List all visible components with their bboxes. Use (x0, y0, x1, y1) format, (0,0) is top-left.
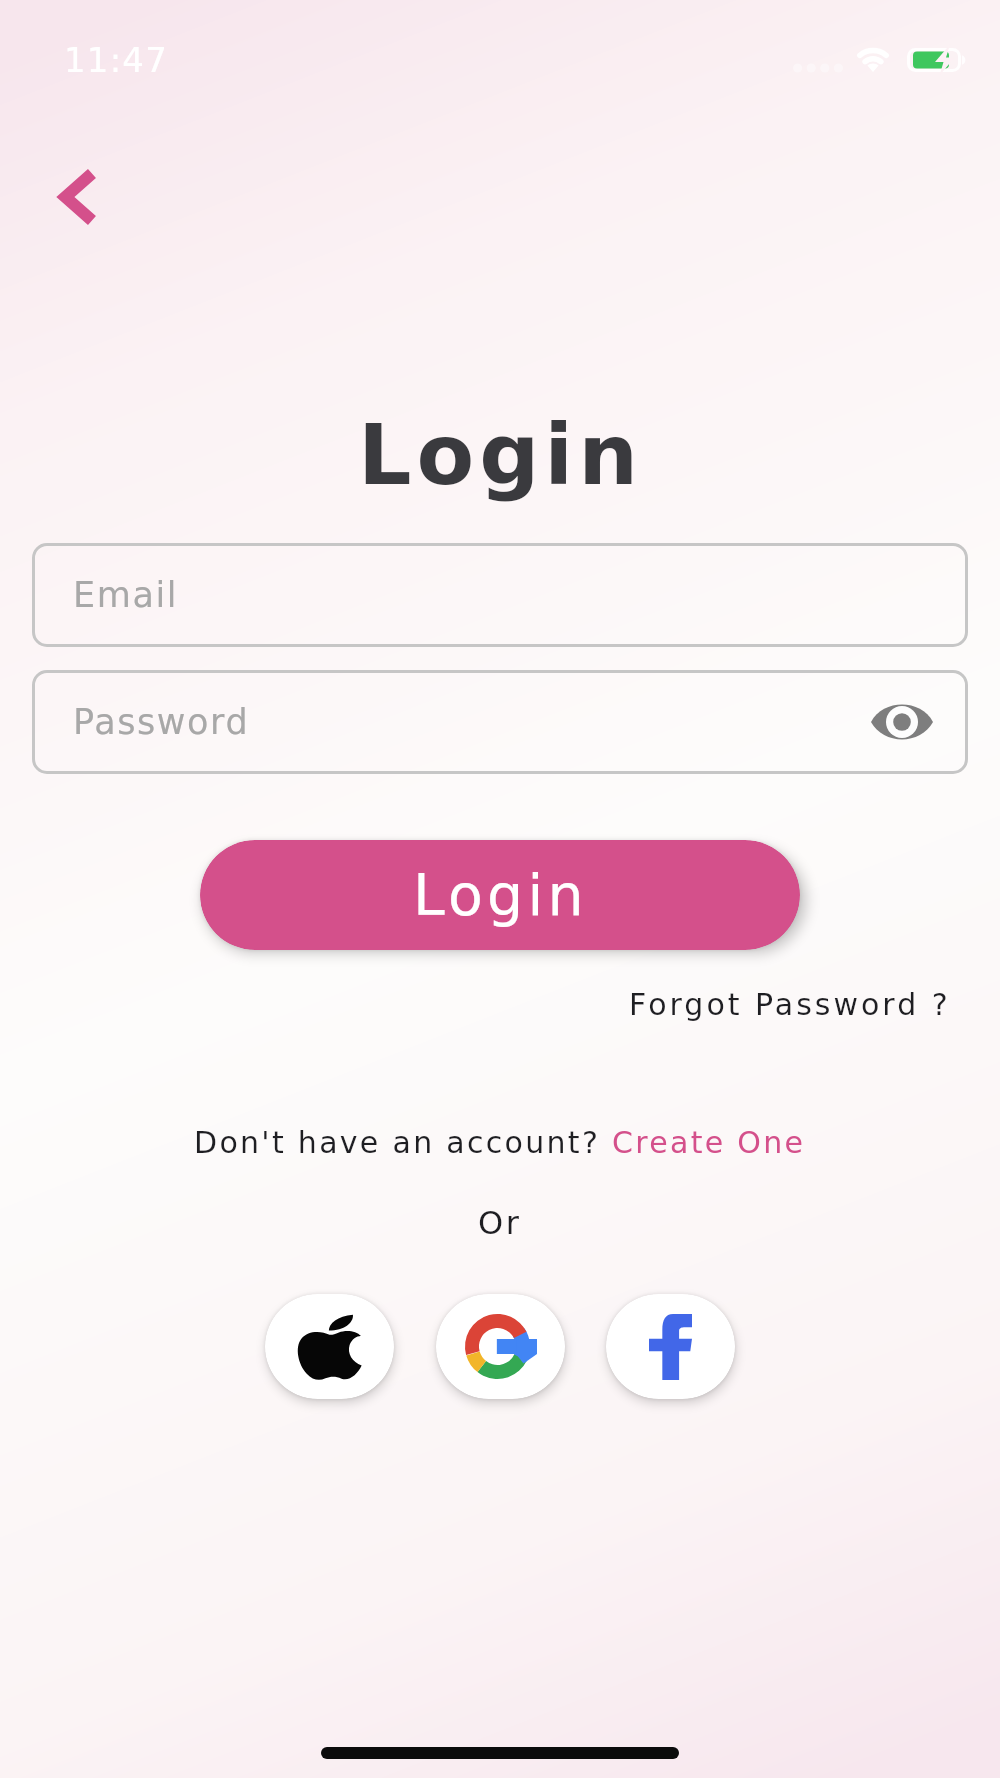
staticText: Email (73, 575, 179, 616)
staticText: Login (413, 862, 588, 928)
button[interactable]: Password (32, 670, 968, 774)
button[interactable]: Show password (871, 702, 933, 742)
staticText: Don't have an account? Create One (194, 1125, 806, 1160)
button[interactable]: Back (31, 145, 121, 249)
button[interactable]: Don't have an account? Create One (194, 1125, 806, 1160)
staticText: Password (73, 702, 250, 743)
button[interactable]: Forgot Password ? (629, 987, 951, 1022)
staticText: 11:47 (64, 40, 168, 80)
staticText: Or (478, 1204, 522, 1241)
button[interactable] (606, 1294, 735, 1399)
staticText: Forgot Password ? (629, 987, 951, 1022)
button[interactable] (436, 1294, 565, 1399)
button[interactable]: Email (32, 543, 968, 647)
button[interactable]: Login (200, 840, 800, 950)
staticText: Login (358, 406, 643, 504)
button[interactable] (265, 1294, 394, 1399)
